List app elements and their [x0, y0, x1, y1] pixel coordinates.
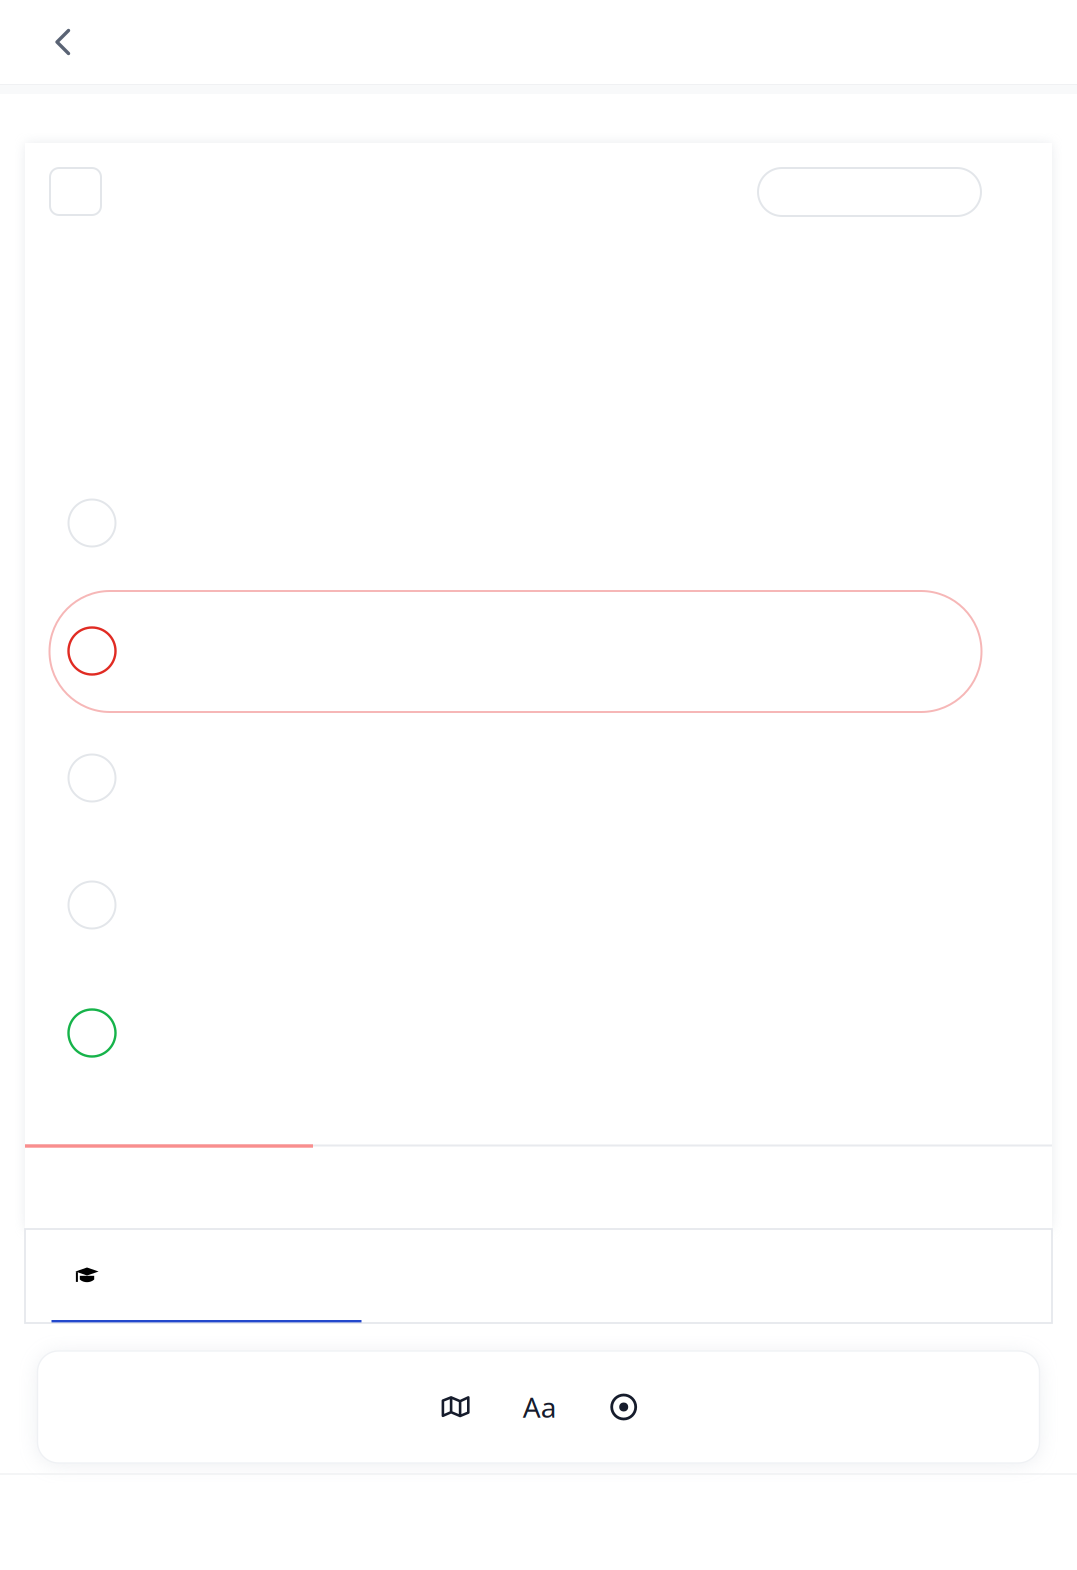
button[interactable]: Text size — [500, 1367, 580, 1447]
button[interactable]: Appearance — [584, 1367, 664, 1447]
button[interactable]: Contents — [415, 1367, 495, 1447]
button[interactable]: Back — [20, 0, 106, 84]
staticText: Aa — [523, 1388, 557, 1426]
